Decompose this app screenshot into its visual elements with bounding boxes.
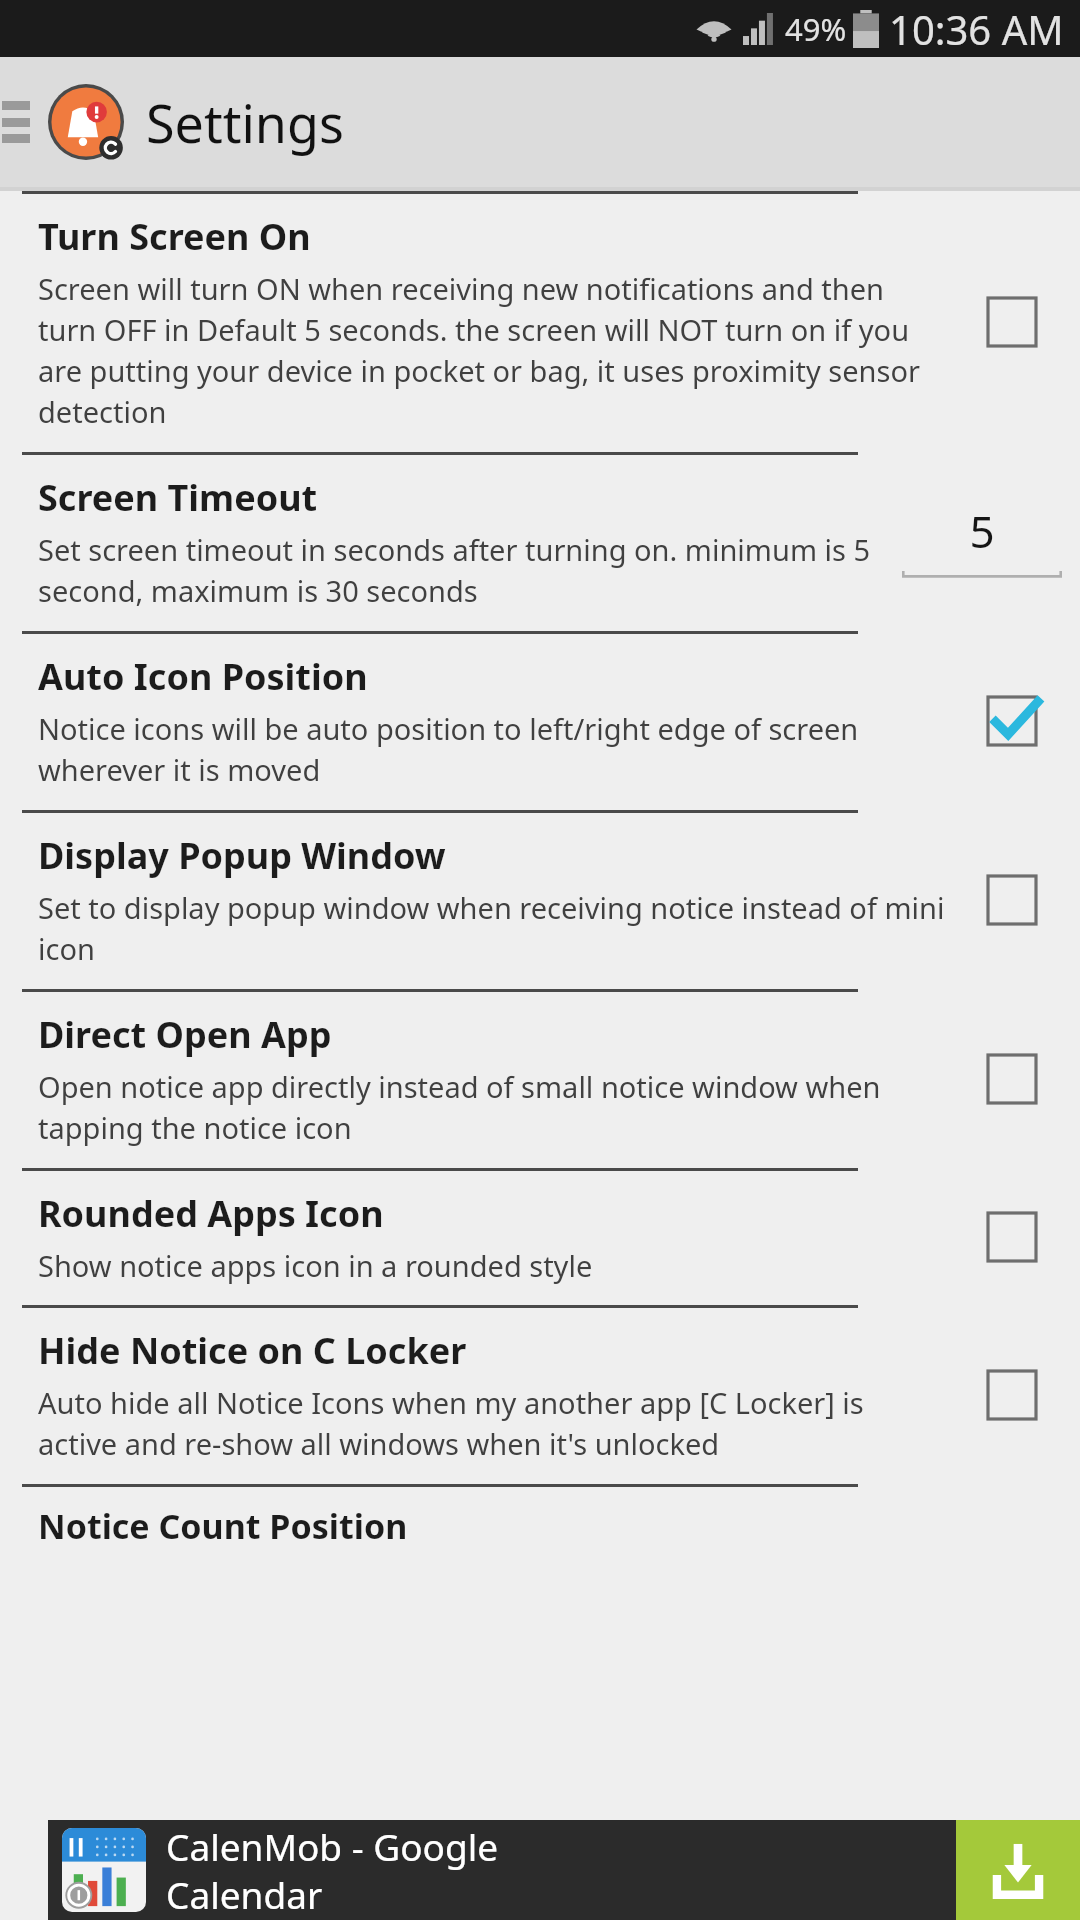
staticText: Settings: [146, 87, 344, 158]
button[interactable]: 5: [902, 501, 1062, 583]
staticText: CalenMob - Google Calendar: [166, 1821, 499, 1920]
button[interactable]: Disabled: [962, 870, 1062, 930]
staticText: Hide Notice on C Locker: [38, 1326, 467, 1375]
staticText: Open notice app directly instead of smal…: [38, 1067, 948, 1148]
button[interactable]: Menu: [2, 94, 30, 150]
button[interactable]: Disabled: [962, 1207, 1062, 1267]
staticText: 49%: [785, 8, 847, 50]
staticText: Display Popup Window: [38, 831, 446, 880]
staticText: 10:36 AM: [889, 2, 1064, 56]
button[interactable]: Hide Notice on C Locker: [0, 1308, 1080, 1484]
button[interactable]: Rounded Apps Icon: [0, 1171, 1080, 1305]
staticText: Screen Timeout: [38, 473, 318, 522]
button[interactable]: Disabled: [962, 292, 1062, 352]
staticText: Turn Screen On: [38, 212, 311, 261]
staticText: Rounded Apps Icon: [38, 1189, 384, 1238]
staticText: 5: [902, 501, 1062, 561]
button[interactable]: CalenMob - Google Calendar: [48, 1820, 1080, 1920]
staticText: Screen will turn ON when receiving new n…: [38, 269, 948, 432]
staticText: Notice Count Position: [38, 1503, 408, 1549]
staticText: Auto hide all Notice Icons when my anoth…: [38, 1383, 948, 1464]
staticText: Show notice apps icon in a rounded style: [38, 1246, 593, 1285]
button[interactable]: Direct Open App: [0, 992, 1080, 1168]
button[interactable]: Disabled: [962, 1049, 1062, 1109]
staticText: Direct Open App: [38, 1010, 332, 1059]
staticText: Set screen timeout in seconds after turn…: [38, 530, 888, 611]
button[interactable]: Disabled: [962, 1365, 1062, 1425]
button[interactable]: Screen Timeout: [0, 455, 1080, 631]
staticText: Set to display popup window when receivi…: [38, 888, 948, 969]
button[interactable]: Turn Screen On: [0, 194, 1080, 452]
button[interactable]: Enabled: [962, 691, 1062, 751]
button[interactable]: Display Popup Window: [0, 813, 1080, 989]
staticText: Notice icons will be auto position to le…: [38, 709, 948, 790]
staticText: Auto Icon Position: [38, 652, 368, 701]
button[interactable]: Auto Icon Position: [0, 634, 1080, 810]
button[interactable]: Install: [956, 1820, 1080, 1920]
